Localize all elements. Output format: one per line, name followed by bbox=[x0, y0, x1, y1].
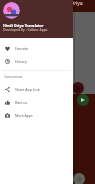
button[interactable]: Speak bbox=[77, 94, 89, 106]
button[interactable]: Rate us bbox=[0, 96, 73, 109]
button[interactable]: Keyboard bbox=[73, 173, 85, 184]
button[interactable]: History bbox=[0, 55, 73, 68]
staticText: Developed By : Caliber Apps bbox=[3, 27, 48, 32]
button[interactable]: Microphone bbox=[72, 82, 84, 94]
staticText: Communicate bbox=[4, 75, 23, 79]
staticText: History bbox=[15, 59, 27, 64]
staticText: Hindi Oriya Translator bbox=[3, 23, 44, 28]
button[interactable]: Favorite bbox=[0, 42, 73, 55]
staticText: Favorite bbox=[15, 46, 29, 51]
staticText: More Apps bbox=[15, 113, 33, 118]
button[interactable]: Share App Link bbox=[0, 83, 73, 96]
staticText: Share App Link bbox=[15, 87, 40, 92]
staticText: Rate us bbox=[15, 100, 28, 105]
button[interactable]: More Apps bbox=[0, 109, 73, 122]
staticText: Oriya bbox=[70, 0, 83, 7]
